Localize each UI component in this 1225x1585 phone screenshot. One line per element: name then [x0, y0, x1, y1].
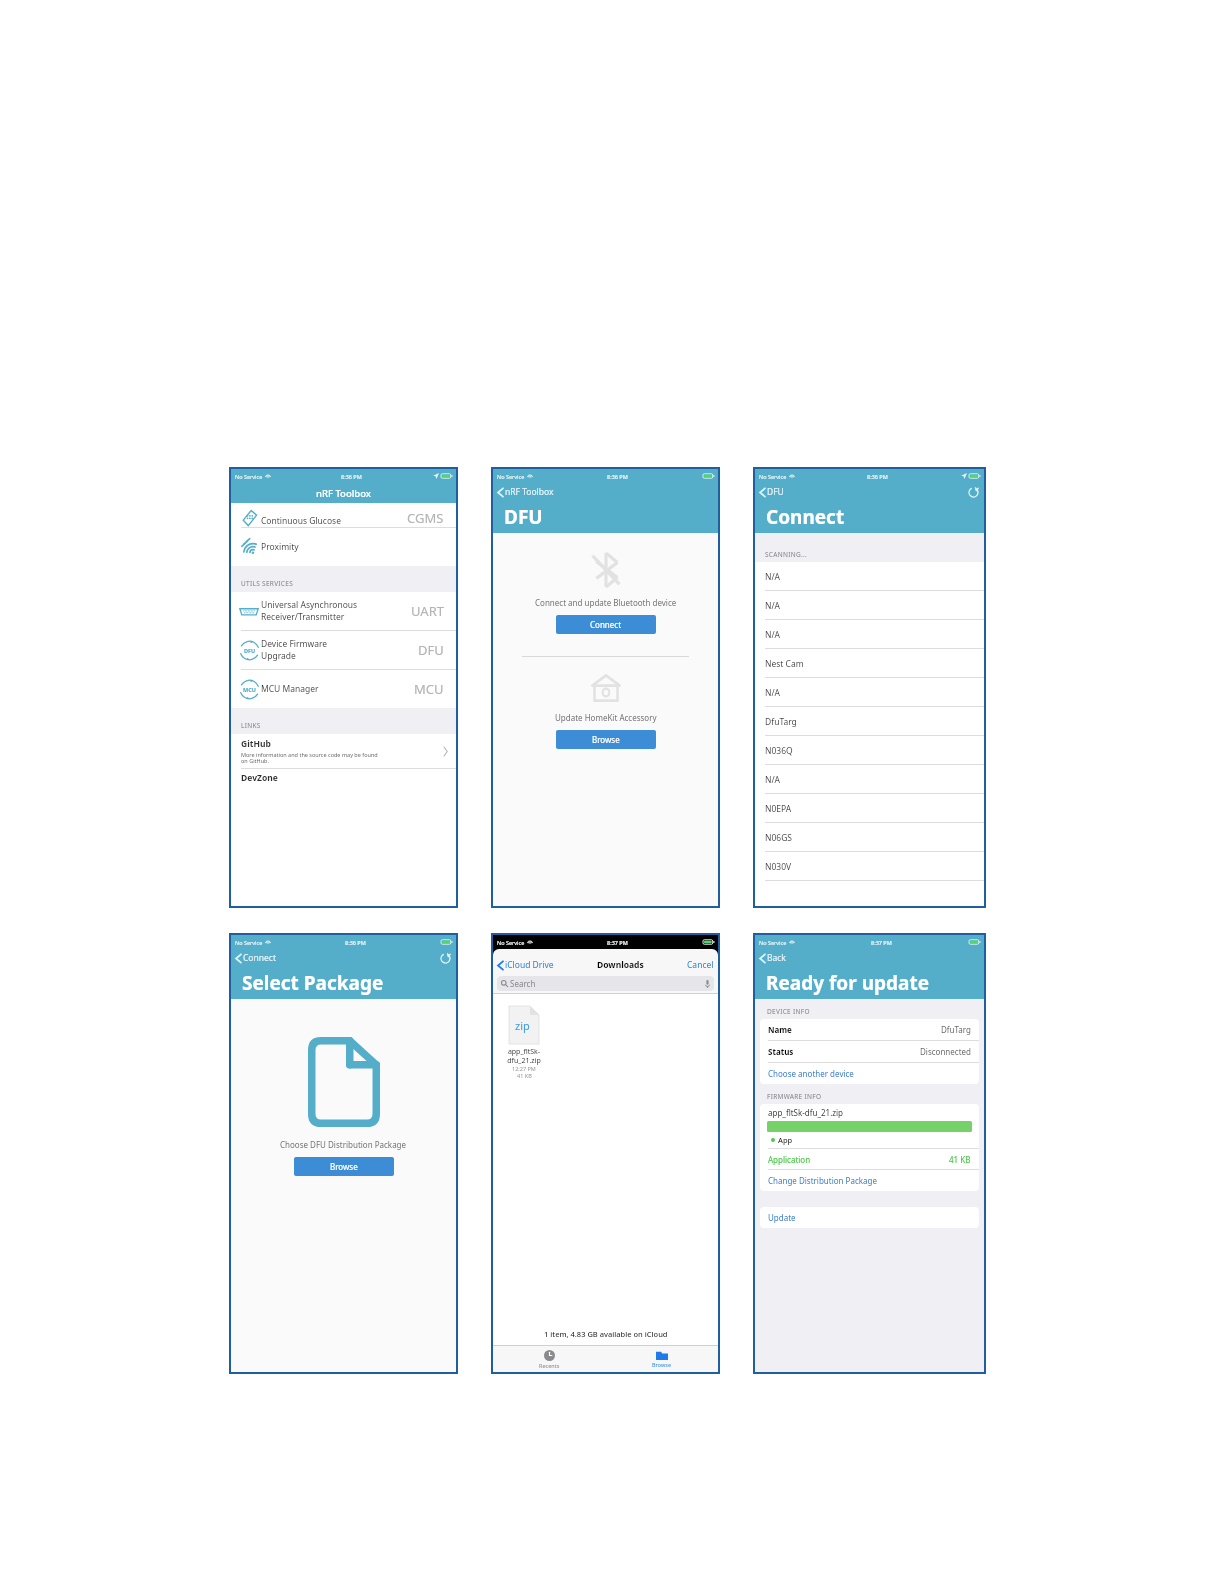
staticText: nRF Toolbox: [316, 487, 371, 500]
staticText: FIRMWARE INFO: [767, 1092, 822, 1101]
staticText: DEVICE INFO: [767, 1007, 810, 1016]
staticText: N036Q: [765, 745, 793, 757]
staticText: Nest Cam: [765, 658, 804, 670]
staticText: Proximity: [261, 541, 299, 553]
staticText: Universal Asynchronous: [261, 599, 358, 611]
staticText: More information and the source code may…: [241, 751, 378, 765]
staticText: Connect: [766, 504, 845, 530]
staticText: Device Firmware: [261, 638, 328, 650]
button[interactable]: N030V: [755, 852, 984, 881]
button[interactable]: N036Q: [755, 736, 984, 765]
button[interactable]: Nest Cam: [755, 649, 984, 678]
staticText: N/A: [765, 600, 781, 612]
button[interactable]: N06GS: [755, 823, 984, 852]
staticText: Connect: [243, 952, 276, 964]
staticText: MCU Manager: [261, 683, 319, 695]
staticText: Disconnected: [920, 1046, 971, 1057]
staticText: UART: [411, 602, 444, 620]
staticText: DFU: [767, 486, 784, 498]
staticText: No Service: [497, 473, 525, 480]
staticText: 1 item, 4.83 GB available on iCloud: [544, 1329, 668, 1339]
staticText: iCloud Drive: [505, 959, 554, 971]
staticText: 8:37 PM: [607, 939, 628, 946]
button[interactable]: MCU: [231, 670, 456, 708]
button[interactable]: DFU: [231, 631, 456, 669]
staticText: No Service: [759, 473, 787, 480]
button[interactable]: Back: [758, 952, 787, 964]
button[interactable]: N/A: [755, 562, 984, 591]
staticText: Choose another device: [768, 1068, 854, 1079]
staticText: Connect: [590, 619, 622, 630]
staticText: GitHub: [241, 738, 271, 750]
staticText: No Service: [235, 939, 263, 946]
staticText: No Service: [497, 939, 525, 946]
staticText: app_fltSk- dfu_21.zip: [507, 1047, 541, 1065]
button[interactable]: Browse: [294, 1157, 394, 1176]
button[interactable]: Name: [768, 1019, 971, 1040]
staticText: DfuTarg: [941, 1024, 971, 1035]
staticText: Update HomeKit Accessory: [555, 712, 657, 723]
button[interactable]: N/A: [755, 678, 984, 707]
staticText: DFU: [504, 504, 543, 530]
button[interactable]: Browse: [556, 730, 656, 749]
staticText: Browse: [652, 1361, 672, 1368]
staticText: Select Package: [242, 970, 384, 996]
button[interactable]: Browse: [605, 1346, 718, 1372]
button[interactable]: Connect: [556, 615, 656, 634]
staticText: N/A: [765, 571, 781, 583]
button[interactable]: DFU: [758, 486, 785, 498]
button[interactable]: Update: [760, 1207, 979, 1228]
button[interactable]: Proximity: [231, 528, 456, 566]
staticText: MCU: [243, 686, 256, 693]
staticText: Continuous Glucose: [261, 515, 341, 527]
staticText: Application: [768, 1154, 811, 1165]
button[interactable]: Recents: [493, 1346, 605, 1372]
staticText: Recents: [539, 1362, 560, 1369]
staticText: DFU: [244, 647, 256, 654]
button[interactable]: Cancel: [687, 959, 714, 971]
staticText: 41 KB: [517, 1072, 532, 1079]
button[interactable]: N0EPA: [755, 794, 984, 823]
staticText: 41 KB: [949, 1154, 971, 1165]
staticText: app_fltSk-dfu_21.zip: [768, 1107, 844, 1118]
button[interactable]: DfuTarg: [755, 707, 984, 736]
staticText: Browse: [592, 734, 620, 745]
staticText: N06GS: [765, 832, 793, 844]
staticText: Downloads: [597, 959, 644, 971]
button[interactable]: Refresh: [437, 950, 453, 966]
button[interactable]: DevZone: [231, 769, 456, 906]
button[interactable]: iCloud Drive: [497, 959, 554, 971]
button[interactable]: Universal Asynchronous: [231, 592, 456, 630]
staticText: nRF Toolbox: [505, 486, 554, 498]
button[interactable]: N/A: [755, 765, 984, 794]
staticText: No Service: [759, 939, 787, 946]
button[interactable]: Choose another device: [760, 1063, 979, 1084]
button[interactable]: Change Distribution Package: [760, 1170, 979, 1191]
staticText: Back: [767, 952, 786, 964]
button[interactable]: nRF Toolbox: [496, 486, 555, 498]
staticText: 8:36 PM: [607, 473, 628, 480]
staticText: DFU: [418, 641, 444, 659]
button[interactable]: Connect: [234, 952, 277, 964]
staticText: App: [778, 1135, 793, 1145]
staticText: Ready for update: [766, 970, 929, 996]
button[interactable]: Status: [768, 1041, 971, 1062]
button[interactable]: Refresh: [965, 484, 981, 500]
staticText: 8:36 PM: [341, 473, 362, 480]
button[interactable]: N/A: [755, 591, 984, 620]
staticText: Search: [510, 978, 536, 989]
staticText: Connect and update Bluetooth device: [535, 597, 677, 608]
staticText: DfuTarg: [765, 716, 797, 728]
staticText: N/A: [765, 629, 781, 641]
staticText: Update: [768, 1212, 796, 1223]
staticText: 8:36 PM: [867, 473, 888, 480]
staticText: Change Distribution Package: [768, 1175, 877, 1186]
staticText: No Service: [235, 473, 263, 480]
button[interactable]: N/A: [755, 620, 984, 649]
button[interactable]: Continuous Glucose: [231, 503, 456, 527]
button[interactable]: Search: [501, 976, 710, 991]
button[interactable]: GitHub: [231, 734, 456, 768]
staticText: Upgrade: [261, 650, 296, 662]
staticText: CGMS: [407, 509, 444, 527]
staticText: Name: [768, 1024, 792, 1035]
